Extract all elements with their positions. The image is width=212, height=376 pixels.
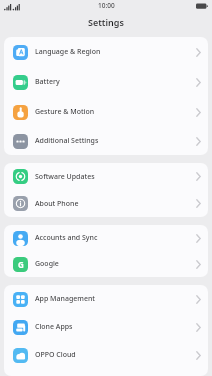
button[interactable]: Language & Region (4, 37, 208, 67)
staticText: Software Updates (35, 172, 95, 182)
button[interactable]: Gesture & Motion (4, 97, 208, 127)
staticText: Battery (35, 77, 60, 87)
button[interactable]: Software Updates (4, 163, 208, 190)
button[interactable]: G (4, 251, 208, 277)
button[interactable]: OPPO Cloud (4, 341, 208, 369)
button[interactable]: App Management (4, 285, 208, 313)
staticText: About Phone (35, 199, 79, 209)
button[interactable]: Accounts and Sync (4, 225, 208, 251)
staticText: Accounts and Sync (35, 233, 98, 243)
button[interactable]: About Phone (4, 190, 208, 217)
button[interactable]: Additional Settings (4, 127, 208, 155)
staticText: Google (35, 259, 59, 269)
button[interactable]: Battery (4, 67, 208, 97)
staticText: App Management (35, 294, 95, 304)
staticText: G (18, 259, 24, 270)
staticText: Gesture & Motion (35, 107, 95, 117)
staticText: 10:00 (98, 1, 115, 10)
staticText: Language & Region (35, 47, 101, 57)
staticText: Settings (88, 16, 124, 28)
staticText: Additional Settings (35, 136, 99, 146)
staticText: OPPO Cloud (35, 350, 76, 360)
staticText: Clone Apps (35, 322, 73, 332)
button[interactable]: Clone Apps (4, 313, 208, 341)
